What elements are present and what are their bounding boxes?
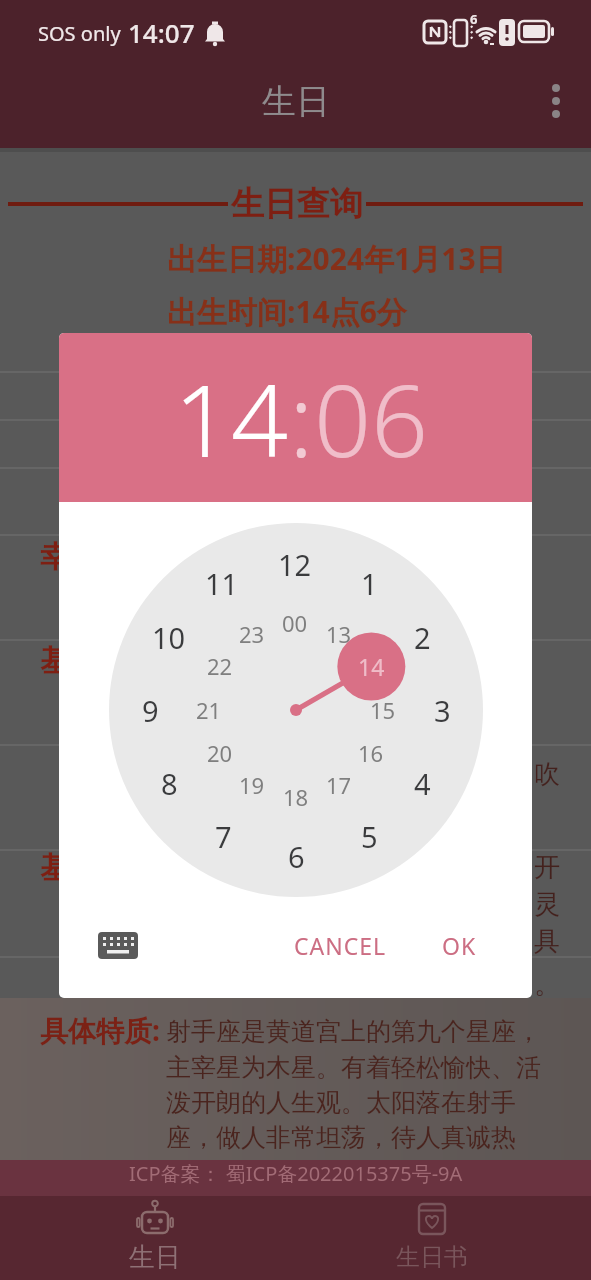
staticText: 14 [358, 651, 385, 682]
staticText: 6 [470, 10, 478, 28]
staticText: 1 [361, 564, 378, 603]
staticText: 17 [326, 770, 352, 800]
staticText: 13 [326, 619, 352, 649]
button[interactable] [160, 238, 520, 280]
staticText: 生日 [262, 80, 330, 123]
staticText: 具体特质: [40, 1011, 160, 1049]
button[interactable] [538, 78, 574, 124]
staticText: 21 [196, 695, 222, 725]
staticText: 开 [534, 851, 560, 884]
staticText: 2 [414, 618, 431, 657]
staticText: 主宰星为木星。有着轻松愉快、活 [166, 1052, 541, 1083]
staticText: 14 [174, 350, 289, 486]
staticText: 泼开朗的人生观。太阳落在射手 [166, 1087, 516, 1118]
staticText: 00 [282, 608, 308, 638]
staticText: 18 [283, 782, 309, 812]
staticText: : [289, 350, 314, 486]
staticText: 9 [142, 691, 159, 730]
staticText: 基 [40, 642, 70, 680]
button[interactable]: OK [414, 920, 504, 970]
staticText: 生日 [129, 1241, 181, 1274]
staticText: 23 [239, 619, 265, 649]
staticText: 幸 [40, 538, 70, 576]
staticText: 16 [358, 738, 384, 768]
staticText: 出生时间:14点6分 [167, 291, 407, 332]
staticText: 吹 [534, 758, 560, 791]
staticText: 8 [161, 764, 178, 803]
staticText: 10 [152, 618, 186, 657]
staticText: 19 [239, 770, 265, 800]
staticText: 14:07 [128, 15, 195, 50]
button[interactable] [160, 292, 410, 334]
staticText: 6 [288, 837, 305, 876]
staticText: ICP备案： 蜀ICP备2022015375号-9A [129, 1160, 463, 1187]
button[interactable]: CANCEL [270, 920, 410, 970]
staticText: 15 [370, 695, 396, 725]
staticText: 灵 [534, 888, 560, 921]
staticText: 7 [215, 817, 232, 856]
staticText: 11 [205, 564, 239, 603]
staticText: 4 [414, 764, 431, 803]
staticText: CANCEL [294, 930, 387, 961]
staticText: 基 [40, 849, 70, 887]
staticText: 出生日期:2024年1月13日 [167, 238, 506, 279]
staticText: 06 [314, 350, 429, 486]
staticText: SOS only [38, 20, 121, 47]
button[interactable]: 生日 [95, 1196, 215, 1280]
button[interactable]: 生日书 [372, 1196, 492, 1280]
staticText: 具 [534, 925, 560, 958]
staticText: 射手座是黄道宫上的第九个星座， [166, 1016, 541, 1047]
staticText: 20 [207, 738, 233, 768]
staticText: 5 [361, 817, 378, 856]
staticText: 12 [278, 545, 312, 584]
staticText: 生日查询 [231, 183, 363, 225]
staticText: 生日书 [396, 1242, 468, 1272]
button[interactable] [88, 920, 148, 970]
staticText: 3 [434, 691, 451, 730]
staticText: 22 [207, 651, 233, 681]
staticText: 。 [534, 968, 560, 1001]
staticText: 座，做人非常坦荡，待人真诚热 [166, 1122, 516, 1153]
staticText: OK [442, 930, 477, 961]
